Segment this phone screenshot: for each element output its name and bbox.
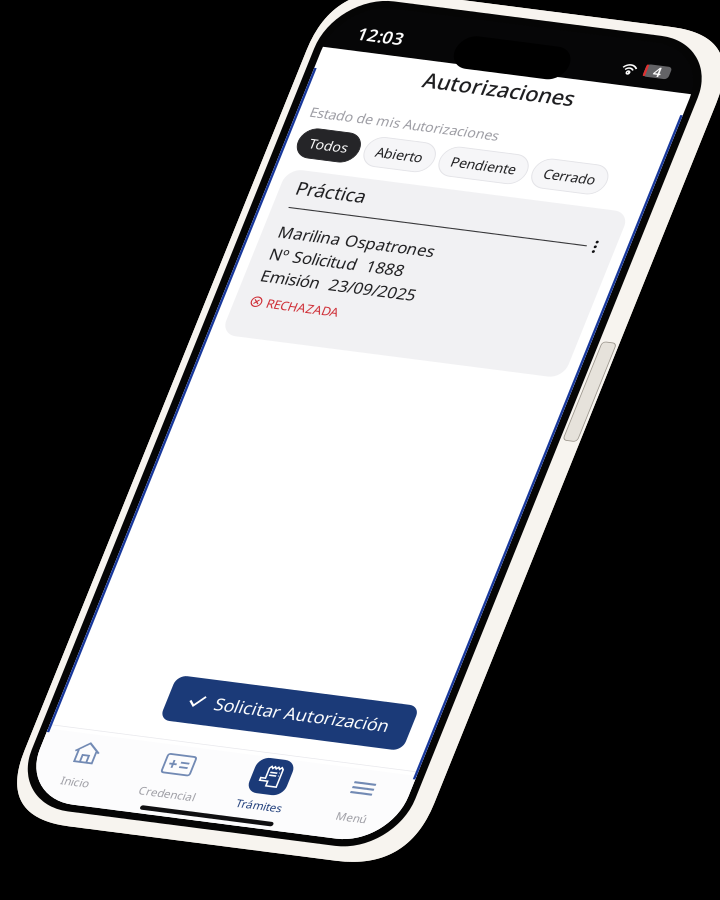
staticText: Marilina Ospatrones xyxy=(46,264,212,287)
button[interactable]: Trámites xyxy=(211,848,310,900)
staticText: Autorizaciones xyxy=(131,76,292,106)
button[interactable]: Pendiente xyxy=(180,159,273,192)
staticText: Cerrado xyxy=(291,166,346,186)
staticText: Solicitar Autorización xyxy=(174,783,360,808)
staticText: Emisión 23/09/2025 xyxy=(46,314,211,337)
staticText: 4 xyxy=(360,41,368,60)
button[interactable]: Menú xyxy=(310,848,408,900)
button[interactable]: Cerrado xyxy=(279,159,358,192)
staticText: Pendiente xyxy=(192,166,261,186)
button[interactable]: Solicitar Autorización xyxy=(124,770,383,821)
button[interactable]: More options xyxy=(356,231,390,265)
